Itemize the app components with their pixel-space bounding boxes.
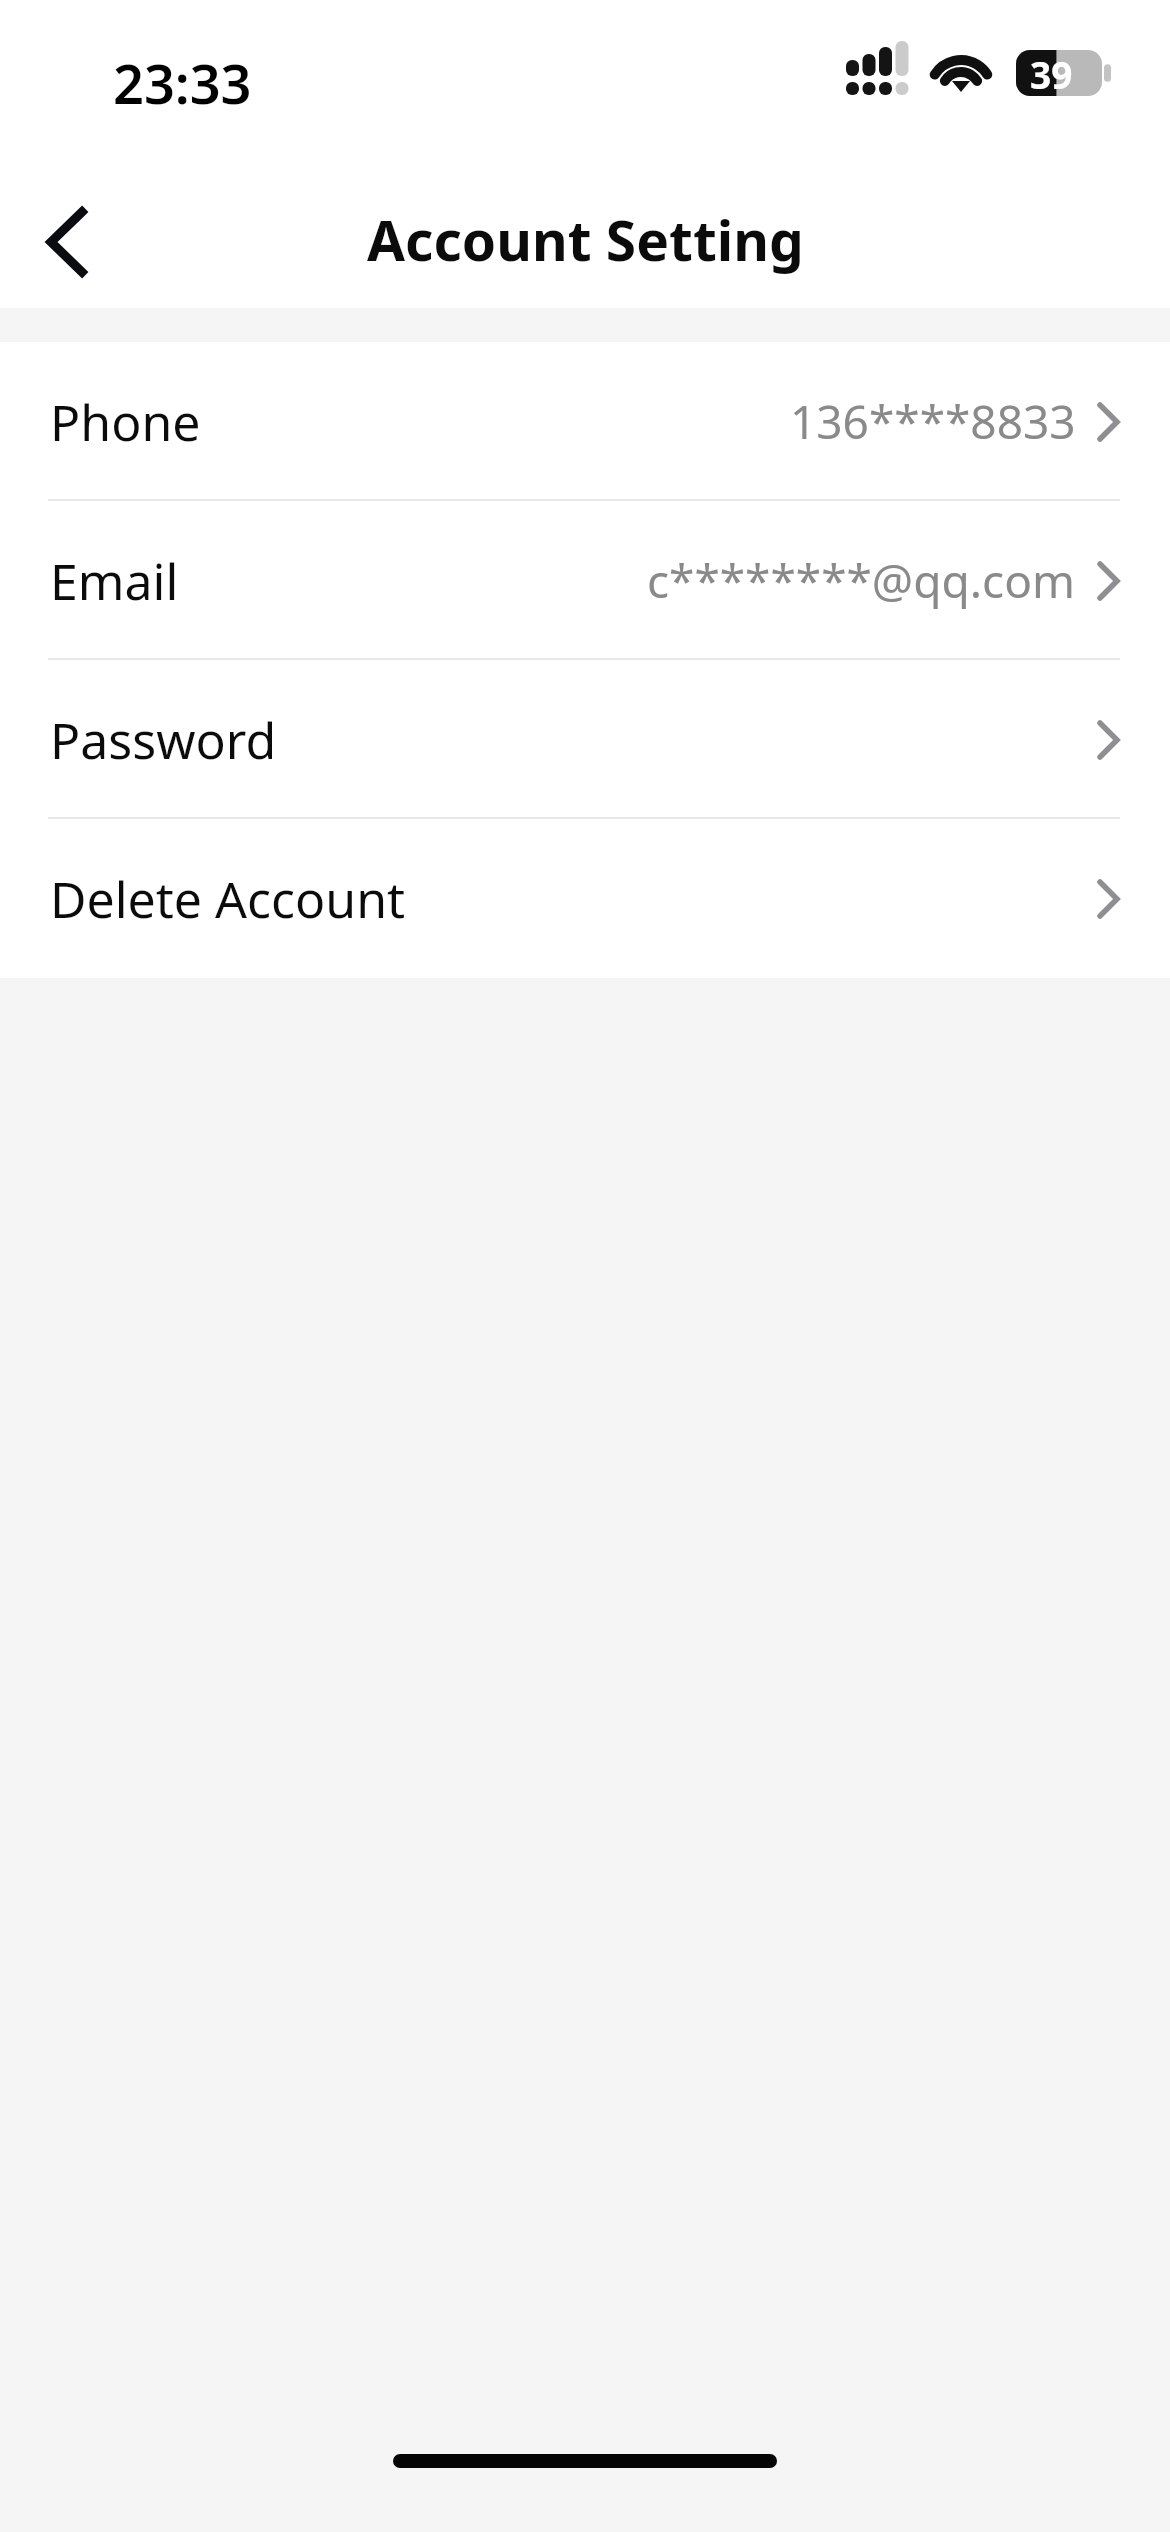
staticText: c********@qq.com [647,549,1076,612]
button[interactable]: Back [20,195,114,289]
staticText: 136****8833 [790,390,1076,453]
button[interactable]: Password [0,660,1170,819]
staticText: 39 [1030,49,1073,95]
staticText: Password [50,706,277,774]
staticText: Delete Account [50,865,406,933]
staticText: Phone [50,388,201,456]
button[interactable]: Phone [0,342,1170,501]
button[interactable]: Email [0,501,1170,660]
staticText: Email [50,547,179,615]
staticText: Account Setting [367,202,804,277]
button[interactable]: Delete Account [0,819,1170,978]
staticText: 23:33 [113,46,252,120]
